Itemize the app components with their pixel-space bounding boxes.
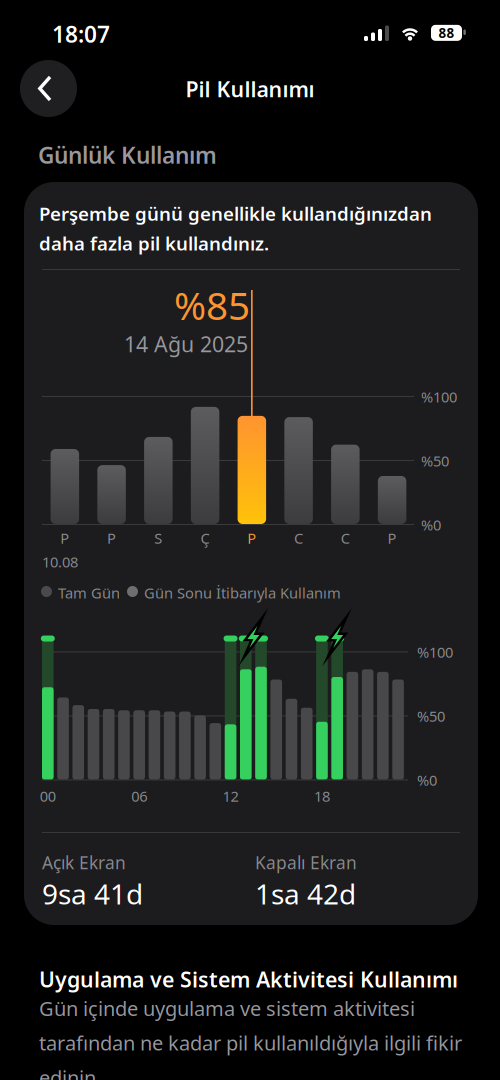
- staticText: Açık Ekran: [42, 851, 126, 874]
- staticText: P: [60, 528, 69, 548]
- staticText: Tam Gün: [58, 583, 120, 602]
- staticText: %0: [421, 515, 441, 534]
- staticText: 18: [314, 786, 330, 806]
- staticText: %50: [421, 451, 449, 470]
- button[interactable]: Back: [20, 60, 77, 117]
- staticText: %85: [174, 279, 250, 331]
- staticText: Kapalı Ekran: [255, 851, 357, 874]
- staticText: Günlük Kullanım: [38, 140, 217, 170]
- staticText: Gün içinde uygulama ve sistem aktivitesi: [39, 995, 415, 1022]
- staticText: 00: [40, 786, 56, 806]
- staticText: edinin.: [39, 1064, 101, 1080]
- staticText: 1sa 42d: [255, 875, 356, 912]
- staticText: %0: [417, 770, 437, 790]
- staticText: %100: [417, 642, 453, 662]
- staticText: Gün Sonu İtibarıyla Kullanım: [144, 583, 341, 602]
- staticText: C: [294, 528, 303, 548]
- staticText: 06: [131, 786, 147, 806]
- staticText: P: [247, 528, 256, 548]
- staticText: Perşembe günü genellikle kullandığınızda…: [39, 201, 432, 226]
- staticText: tarafından ne kadar pil kullanıldığıyla …: [39, 1030, 462, 1056]
- staticText: %50: [417, 706, 445, 726]
- staticText: Ç: [201, 528, 210, 548]
- staticText: %100: [421, 387, 457, 406]
- staticText: Pil Kullanımı: [185, 75, 314, 103]
- staticText: daha fazla pil kullandınız.: [39, 231, 269, 256]
- staticText: 18:07: [52, 19, 110, 49]
- staticText: 88: [438, 24, 454, 42]
- staticText: 9sa 41d: [42, 875, 143, 912]
- staticText: P: [107, 528, 116, 548]
- staticText: 10.08: [42, 552, 78, 571]
- staticText: 12: [223, 786, 239, 806]
- staticText: P: [388, 528, 397, 548]
- staticText: Uygulama ve Sistem Aktivitesi Kullanımı: [39, 965, 458, 993]
- staticText: 14 Ağu 2025: [124, 330, 248, 358]
- staticText: S: [154, 528, 162, 548]
- staticText: C: [341, 528, 350, 548]
